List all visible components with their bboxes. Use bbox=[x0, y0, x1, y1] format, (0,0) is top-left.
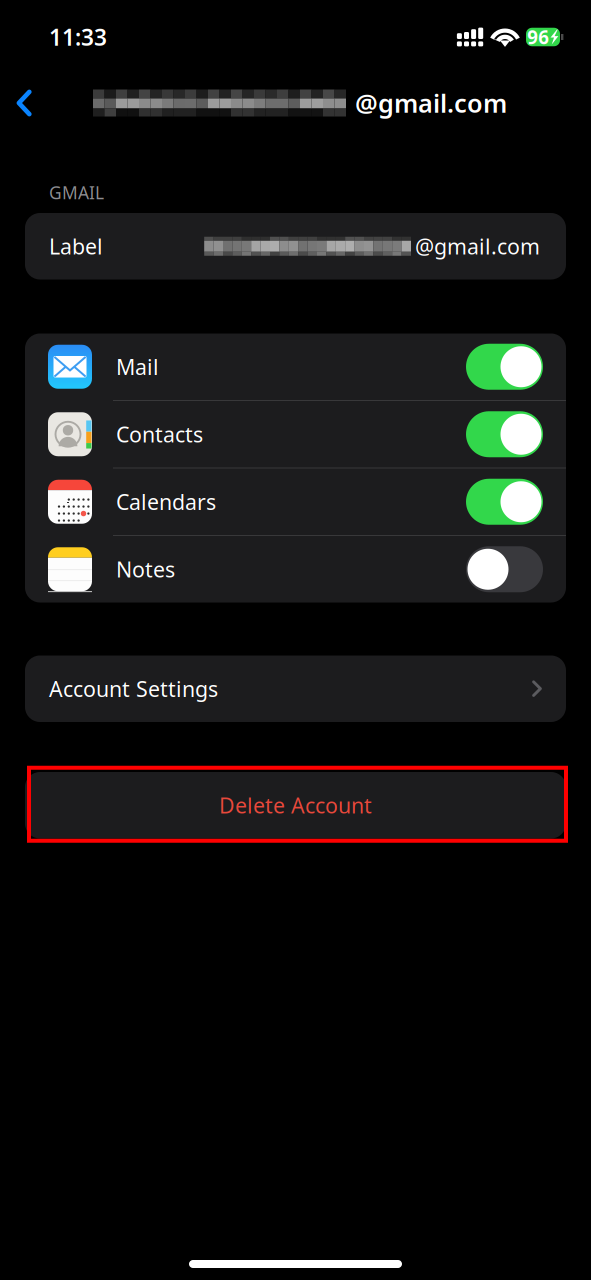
staticText: Account Settings bbox=[49, 675, 218, 703]
staticText: Delete Account bbox=[219, 791, 372, 819]
button[interactable]: Calendars bbox=[25, 468, 566, 535]
staticText: GMAIL bbox=[49, 181, 104, 204]
button[interactable]: Back bbox=[1, 80, 47, 126]
button[interactable]: Notes bbox=[25, 536, 566, 602]
staticText: Contacts bbox=[116, 420, 203, 448]
staticText: @gmail.com bbox=[355, 86, 507, 120]
button[interactable]: Account Settings bbox=[25, 655, 566, 722]
staticText: Label bbox=[49, 232, 103, 260]
staticText: @gmail.com bbox=[415, 232, 540, 260]
staticText: Mail bbox=[116, 353, 159, 381]
staticText: Calendars bbox=[116, 488, 216, 516]
staticText: Notes bbox=[116, 555, 175, 583]
button[interactable]: Label bbox=[25, 213, 566, 279]
staticText: 11:33 bbox=[49, 22, 107, 52]
button[interactable]: Contacts bbox=[25, 401, 566, 467]
staticText: 96 bbox=[527, 25, 549, 49]
button[interactable]: Mail bbox=[25, 333, 566, 400]
button[interactable]: Delete Account bbox=[25, 772, 566, 838]
